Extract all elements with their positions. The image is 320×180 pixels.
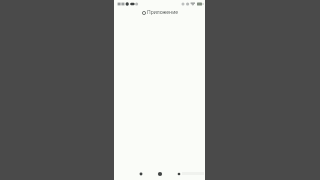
button[interactable]: Приложение xyxy=(142,9,178,16)
button[interactable]: Home xyxy=(154,169,166,178)
button[interactable]: Recent apps xyxy=(173,169,185,178)
button[interactable]: Back xyxy=(135,169,147,178)
staticText: Приложение xyxy=(147,9,178,16)
other: Status bar xyxy=(114,0,205,9)
